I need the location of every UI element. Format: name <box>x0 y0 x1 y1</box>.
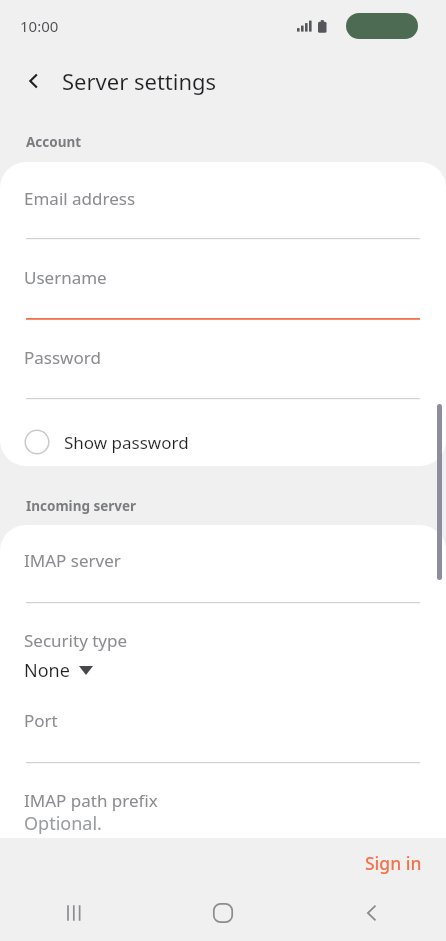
staticText: Username <box>24 266 107 289</box>
button[interactable]: Email address <box>0 178 446 218</box>
staticText: Port <box>24 709 58 732</box>
staticText: IMAP server <box>24 549 121 572</box>
staticText: None <box>24 658 70 683</box>
button[interactable]: IMAP path prefix <box>0 780 446 820</box>
staticText: Email address <box>24 187 136 210</box>
staticText: Show password <box>64 431 189 454</box>
button[interactable]: Recent apps <box>0 885 148 941</box>
button[interactable]: Home <box>148 885 297 941</box>
button[interactable]: Show password <box>0 418 446 466</box>
button[interactable]: Back <box>297 885 446 941</box>
staticText: 10:00 <box>20 16 59 36</box>
staticText: Incoming server <box>26 497 137 515</box>
button[interactable]: Password <box>0 337 446 377</box>
staticText: Password <box>24 346 101 369</box>
button[interactable]: Port <box>0 700 446 740</box>
button[interactable]: None <box>24 653 93 687</box>
button[interactable]: Sign in <box>353 844 434 882</box>
button[interactable]: Security type <box>0 620 446 660</box>
button[interactable]: Username <box>0 257 446 297</box>
staticText: IMAP path prefix <box>24 789 158 812</box>
button[interactable]: Back <box>14 61 54 101</box>
button[interactable]: IMAP server <box>0 540 446 580</box>
staticText: Sign in <box>365 851 422 875</box>
staticText: Server settings <box>62 66 217 96</box>
staticText: Security type <box>24 629 128 652</box>
staticText: Optional. <box>24 811 102 836</box>
staticText: Account <box>26 133 82 151</box>
